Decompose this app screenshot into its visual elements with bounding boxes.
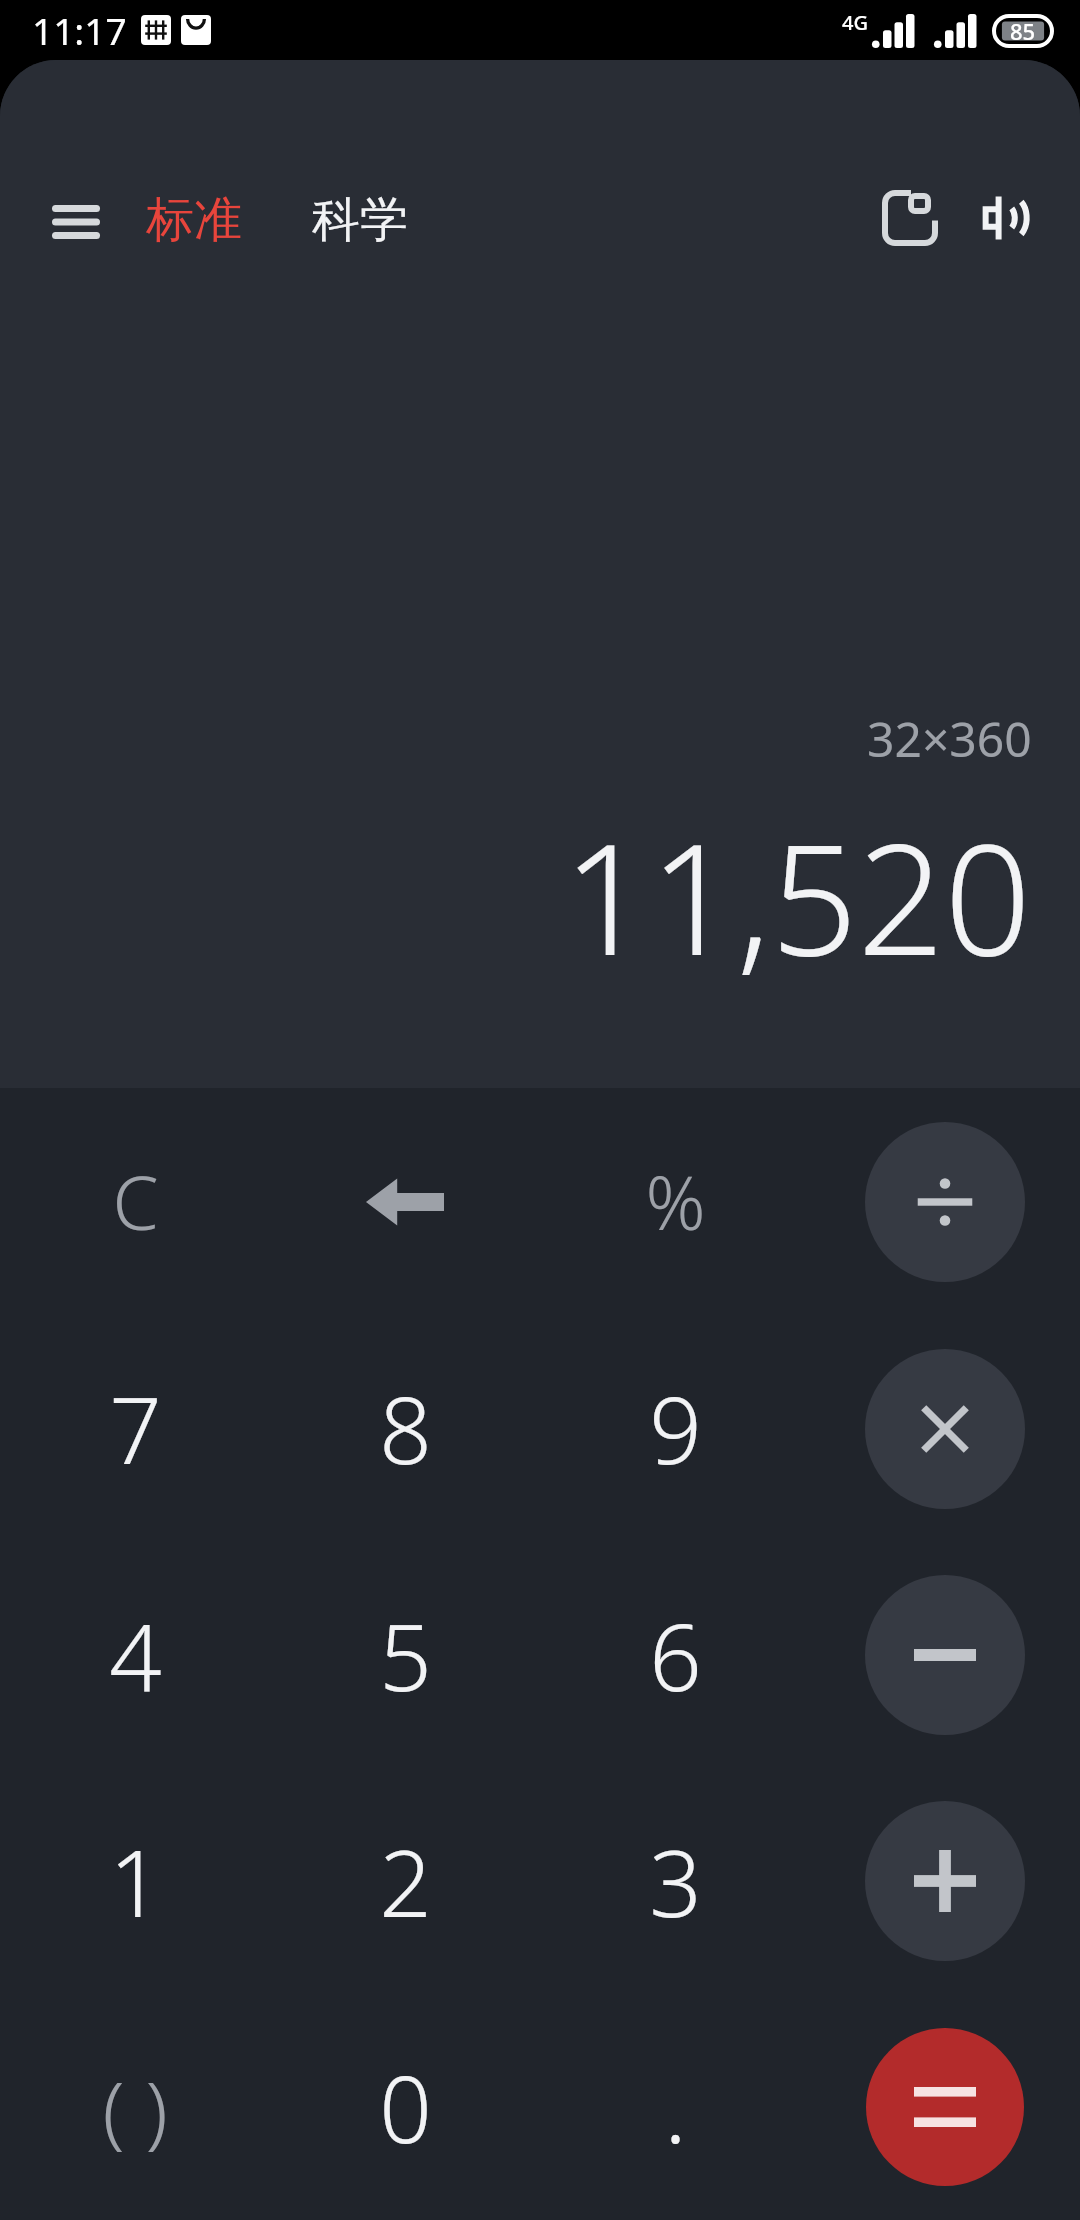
staticText: 32×360 [867,706,1032,771]
staticText: 7 [109,1366,162,1491]
staticText: 8 [379,1366,432,1491]
staticText: 3 [649,1819,702,1944]
button[interactable]: 0 [270,1994,540,2220]
staticText: % [645,1151,706,1252]
button[interactable]: 2 [270,1768,540,1994]
button[interactable]: 9 [540,1315,810,1542]
button[interactable] [810,1768,1080,1994]
button[interactable] [810,1542,1080,1768]
button[interactable]: Floating window [868,176,952,260]
button[interactable]: Sound [962,176,1046,260]
button[interactable]: 标准 [140,180,248,260]
button[interactable] [810,1315,1080,1542]
button[interactable]: 8 [270,1315,540,1542]
button[interactable]: 7 [0,1315,270,1542]
staticText: 2 [379,1819,432,1944]
staticText: 9 [649,1366,702,1491]
staticText: 85 [1010,16,1036,46]
button[interactable]: Backspace [270,1088,540,1315]
staticText: 5 [379,1593,432,1718]
button[interactable]: . [540,1994,810,2220]
button[interactable]: 1 [0,1768,270,1994]
staticText: C [112,1151,159,1252]
button[interactable]: 科学 [306,180,414,260]
staticText: 科学 [312,190,408,250]
button[interactable]: 4 [0,1542,270,1768]
staticText: . [664,2045,687,2170]
button[interactable]: % [540,1088,810,1315]
button[interactable]: 5 [270,1542,540,1768]
button[interactable] [810,1088,1080,1315]
staticText: 标准 [146,190,242,250]
staticText: 4 [109,1593,162,1718]
button[interactable]: C [0,1088,270,1315]
staticText: ( ) [102,2053,168,2162]
button[interactable] [810,1994,1080,2220]
staticText: 1 [109,1819,162,1944]
staticText: 11,520 [563,793,1032,1000]
button[interactable]: 3 [540,1768,810,1994]
button[interactable]: ( ) [0,1994,270,2220]
staticText: 0 [379,2045,432,2170]
staticText: 11:17 [32,5,127,55]
button[interactable]: 6 [540,1542,810,1768]
button[interactable]: Menu [38,184,114,260]
staticText: 4G [842,9,868,36]
staticText: 6 [649,1593,702,1718]
